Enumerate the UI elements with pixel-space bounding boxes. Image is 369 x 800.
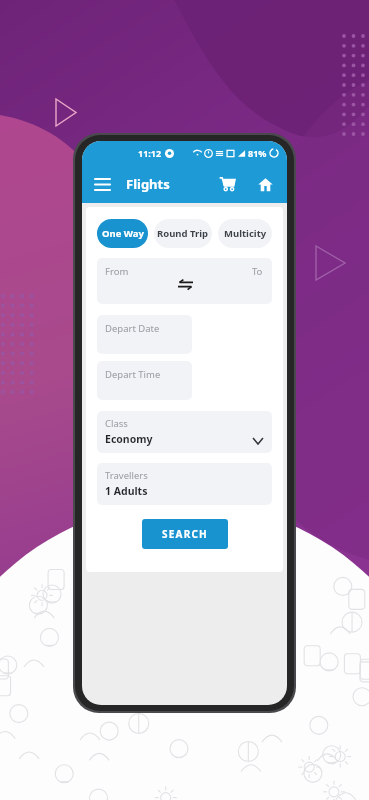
staticText: Multicity xyxy=(224,227,267,240)
staticText: To xyxy=(252,265,263,278)
button[interactable]: Depart Time xyxy=(97,361,192,400)
button[interactable]: From xyxy=(97,258,272,304)
button[interactable]: Multicity xyxy=(218,219,272,248)
staticText: Flights xyxy=(126,175,170,193)
staticText: 81% xyxy=(248,147,267,159)
button[interactable]: Home xyxy=(252,171,278,197)
button[interactable]: Travellers xyxy=(97,463,272,505)
button[interactable]: Depart Date xyxy=(97,315,192,354)
button[interactable]: Swap origin and destination xyxy=(174,273,196,295)
button[interactable]: Round Trip xyxy=(154,219,212,248)
staticText: From xyxy=(105,265,129,278)
button[interactable]: One Way xyxy=(97,219,148,248)
staticText: 1 Adults xyxy=(105,484,148,498)
staticText: 11:12 xyxy=(138,147,162,159)
staticText: Class xyxy=(105,417,128,430)
staticText: SEARCH xyxy=(162,527,208,541)
button[interactable]: Open navigation menu xyxy=(91,173,113,195)
button[interactable]: Cart xyxy=(214,171,240,197)
staticText: Round Trip xyxy=(157,227,209,240)
staticText: One Way xyxy=(102,227,144,240)
button[interactable]: SEARCH xyxy=(142,519,228,549)
staticText: Travellers xyxy=(105,469,148,482)
staticText: Depart Time xyxy=(105,368,161,381)
staticText: Depart Date xyxy=(105,322,160,335)
staticText: Economy xyxy=(105,432,153,446)
button[interactable]: Class xyxy=(97,411,272,453)
